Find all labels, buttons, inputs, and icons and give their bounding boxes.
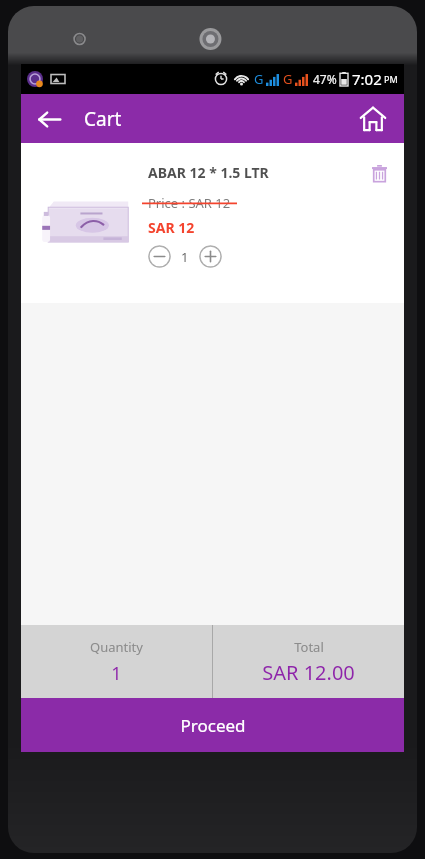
button[interactable]: Total: [213, 625, 404, 698]
button[interactable]: Back: [29, 99, 69, 139]
staticText: Quantity: [90, 638, 143, 656]
button[interactable]: Increase quantity: [199, 245, 222, 268]
staticText: Total: [294, 638, 324, 656]
staticText: Proceed: [180, 714, 246, 737]
button[interactable]: Delete item: [362, 156, 396, 190]
staticText: G: [283, 70, 293, 88]
button[interactable]: Proceed: [21, 698, 404, 752]
button[interactable]: Decrease quantity: [148, 245, 171, 268]
button[interactable]: Quantity: [21, 625, 212, 698]
staticText: SAR 12: [148, 218, 195, 237]
staticText: SAR 12.00: [262, 659, 355, 686]
staticText: 1: [111, 661, 122, 686]
staticText: G: [254, 70, 264, 88]
staticText: Price : SAR 12: [148, 194, 231, 212]
staticText: 7:02: [352, 69, 382, 89]
staticText: PM: [384, 73, 398, 85]
button[interactable]: Home: [352, 98, 394, 140]
staticText: 47%: [313, 71, 337, 87]
staticText: Cart: [84, 106, 122, 132]
button[interactable]: ABAR 12 * 1.5 LTR: [21, 143, 404, 303]
staticText: 1: [181, 248, 189, 266]
staticText: ABAR 12 * 1.5 LTR: [148, 163, 269, 182]
